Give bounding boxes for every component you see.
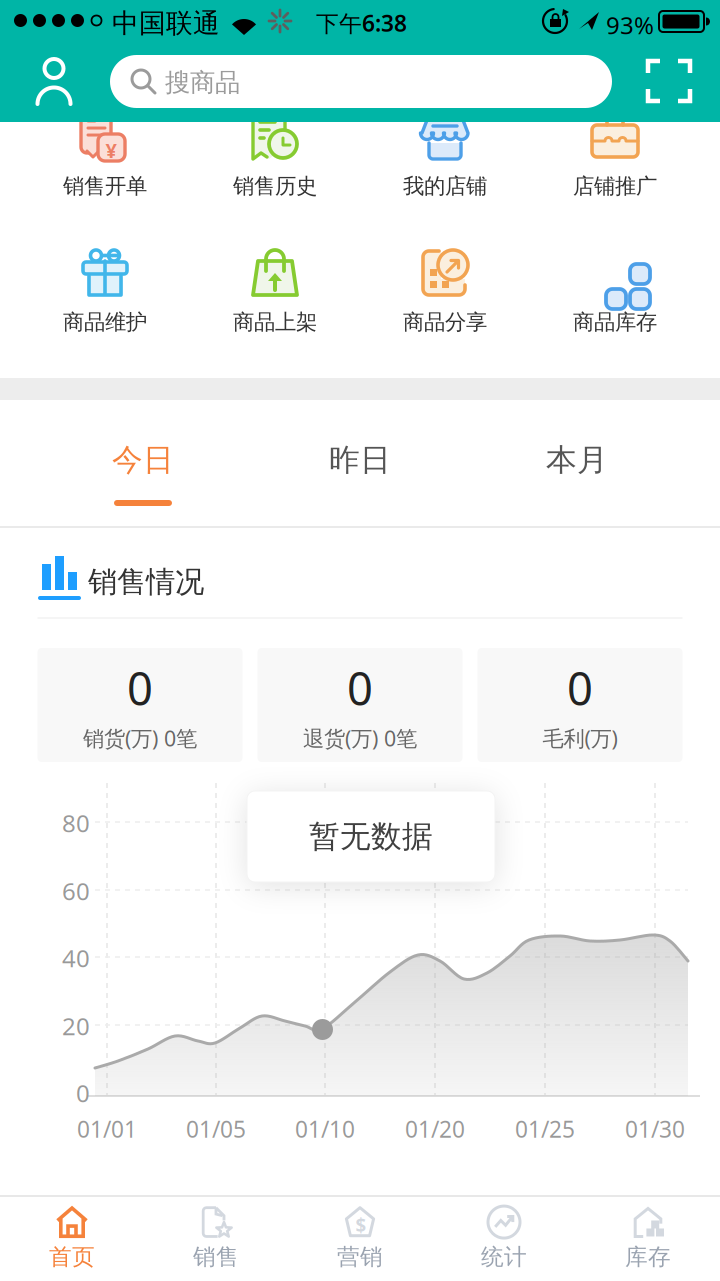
staticText: 销售情况 <box>88 564 204 600</box>
button[interactable]: 今日 <box>83 430 203 490</box>
staticText: 首页 <box>49 1243 95 1271</box>
button[interactable]: 商品维护 <box>20 249 190 335</box>
button[interactable]: 店铺推广 <box>530 113 700 199</box>
staticText: 今日 <box>112 441 174 479</box>
staticText: 01/30 <box>625 1114 685 1144</box>
staticText: 退货(万) 0笔 <box>303 724 417 752</box>
staticText: 0 <box>76 1077 90 1109</box>
staticText: 商品上架 <box>233 309 317 335</box>
button[interactable]: 首页 <box>0 1196 144 1281</box>
staticText: 下午6:38 <box>316 8 407 38</box>
staticText: 01/01 <box>77 1114 137 1144</box>
button[interactable]: 本月 <box>517 430 637 490</box>
button[interactable]: 扫码 <box>645 58 693 104</box>
staticText: ¥ <box>105 137 116 164</box>
staticText: 80 <box>62 807 90 839</box>
staticText: 库存 <box>625 1243 671 1271</box>
staticText: 93% <box>606 9 654 41</box>
staticText: 销售 <box>193 1243 239 1271</box>
staticText: 01/10 <box>295 1114 355 1144</box>
staticText: 营销 <box>337 1243 383 1271</box>
staticText: 01/20 <box>405 1114 465 1144</box>
staticText: $ <box>355 1213 366 1237</box>
staticText: 销售开单 <box>63 173 147 199</box>
staticText: 我的店铺 <box>403 173 487 199</box>
staticText: 20 <box>62 1010 90 1042</box>
staticText: 01/25 <box>515 1114 575 1144</box>
button[interactable]: $ <box>288 1196 432 1281</box>
button[interactable]: 统计 <box>432 1196 576 1281</box>
staticText: 商品维护 <box>63 309 147 335</box>
staticText: 0 <box>347 658 373 718</box>
staticText: 统计 <box>481 1243 527 1271</box>
staticText: 毛利(万) <box>542 724 617 752</box>
staticText: 销售历史 <box>233 173 317 199</box>
staticText: 搜商品 <box>165 67 240 98</box>
staticText: 店铺推广 <box>573 173 657 199</box>
staticText: 昨日 <box>329 441 391 479</box>
button[interactable]: 搜商品 <box>110 55 612 108</box>
staticText: 本月 <box>546 441 608 479</box>
button[interactable]: 我的 <box>37 57 71 105</box>
staticText: 中国联通 <box>112 7 220 40</box>
button[interactable]: 库存 <box>576 1196 720 1281</box>
button[interactable]: 销售历史 <box>190 113 360 199</box>
staticText: 暂无数据 <box>309 818 433 855</box>
staticText: 销货(万) 0笔 <box>83 724 197 752</box>
staticText: 0 <box>567 658 593 718</box>
staticText: 60 <box>62 875 90 907</box>
button[interactable]: 商品分享 <box>360 249 530 335</box>
button[interactable]: 昨日 <box>300 430 420 490</box>
button[interactable]: 销售 <box>144 1196 288 1281</box>
button[interactable]: 商品上架 <box>190 249 360 335</box>
staticText: 商品库存 <box>573 309 657 335</box>
staticText: 01/05 <box>186 1114 246 1144</box>
button[interactable]: 我的店铺 <box>360 113 530 199</box>
button[interactable]: ¥ <box>20 113 190 199</box>
staticText: 商品分享 <box>403 309 487 335</box>
button[interactable]: 商品库存 <box>530 249 700 335</box>
staticText: 40 <box>62 942 90 974</box>
staticText: 0 <box>127 658 153 718</box>
